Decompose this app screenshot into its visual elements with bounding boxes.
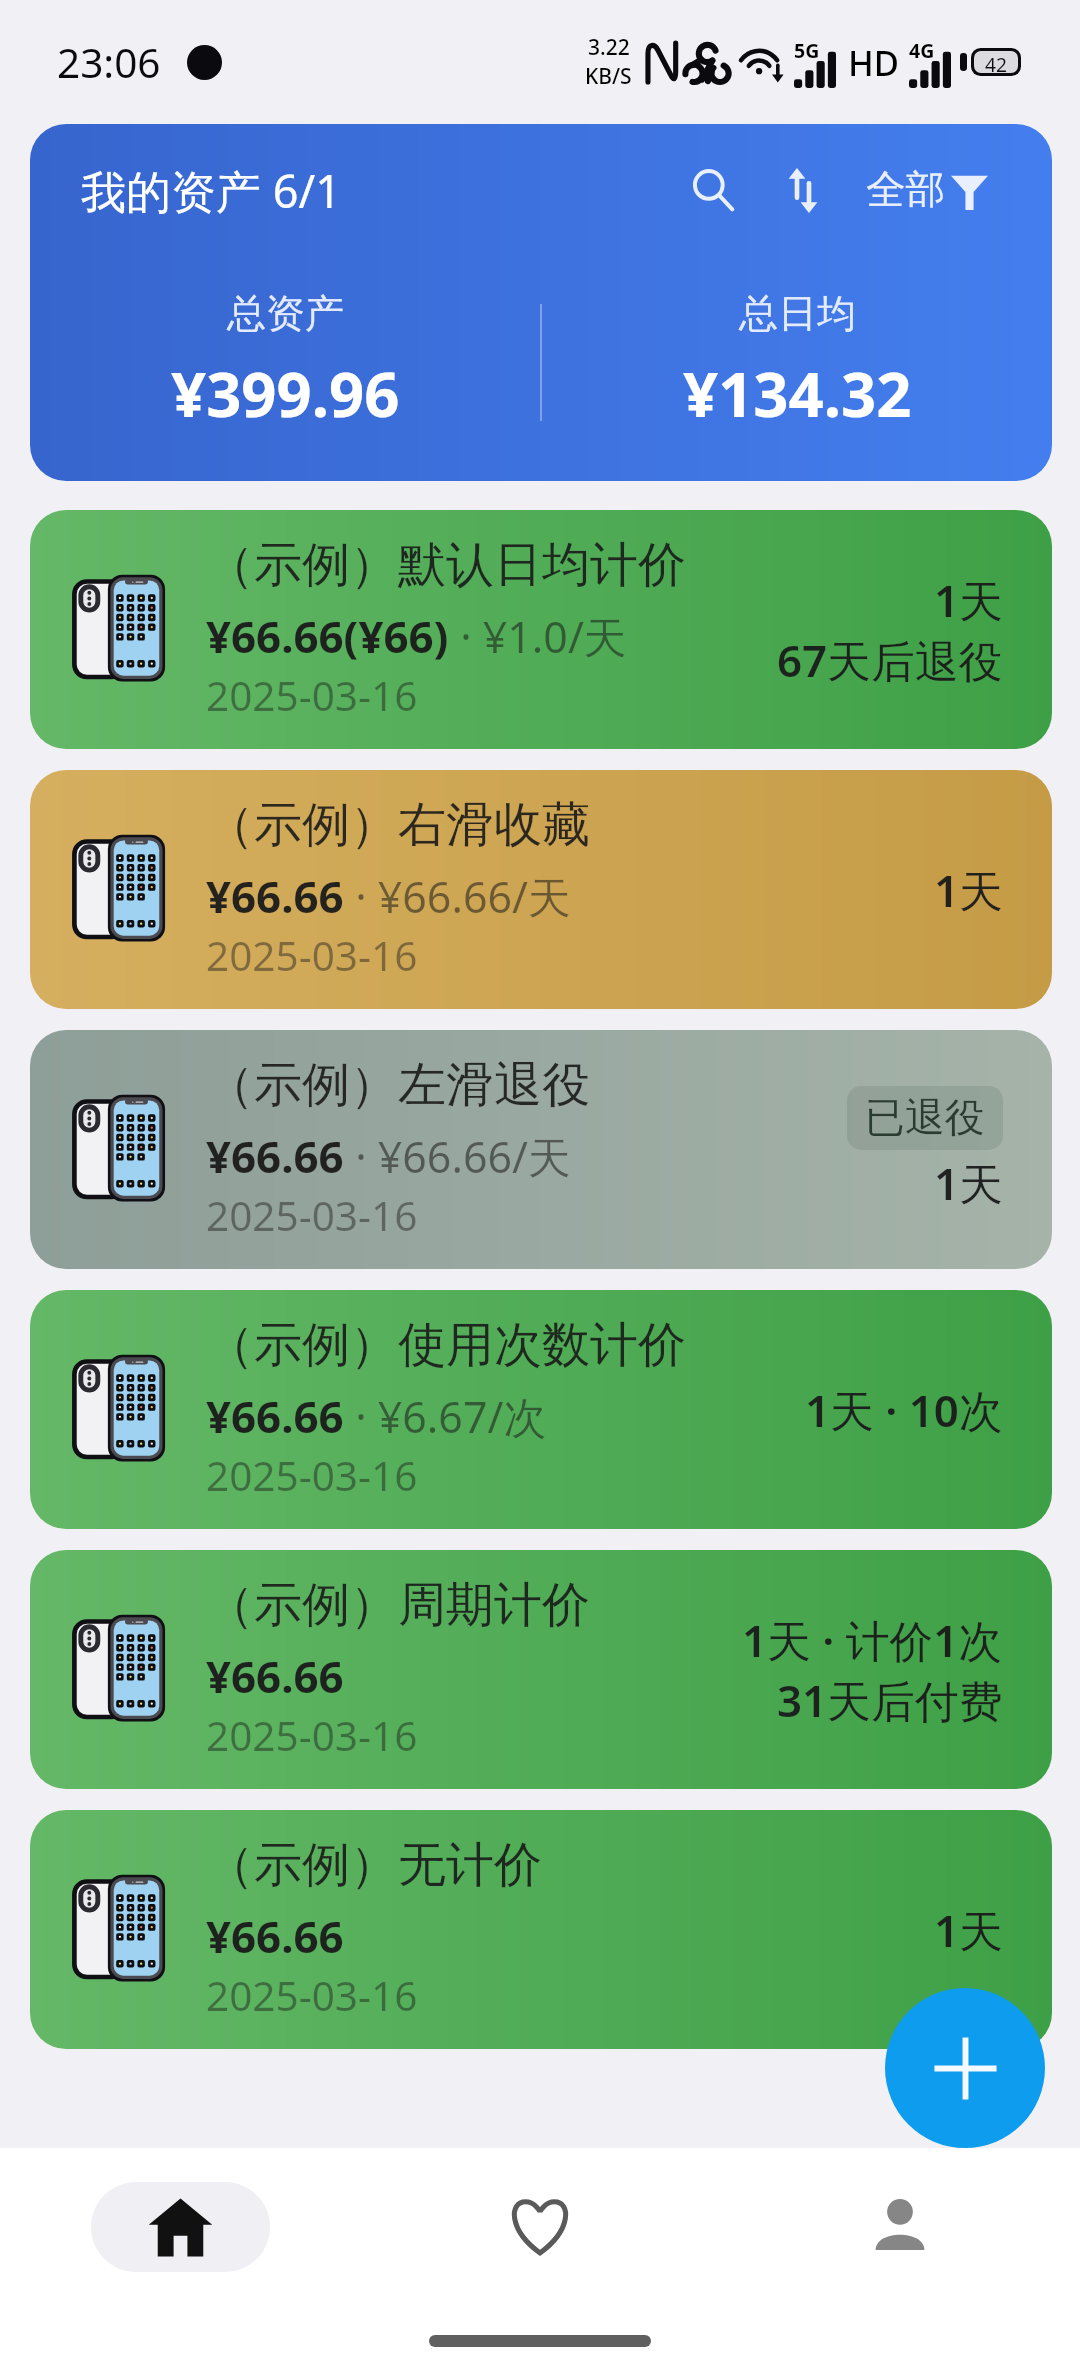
staticText: · ¥66.66/天 <box>344 1127 571 1186</box>
staticText: 已退役 <box>865 1093 985 1143</box>
staticText: 总资产 <box>227 289 344 338</box>
staticText: ¥134.32 <box>683 351 912 435</box>
staticText: ¥66.66 <box>206 866 344 926</box>
button[interactable]: Add asset <box>885 1988 1045 2148</box>
button[interactable]: （示例）无计价 <box>30 1810 1052 2049</box>
staticText: （示例）左滑退役 <box>206 1055 590 1115</box>
staticText: 我的资产 6/1 <box>81 160 341 221</box>
button[interactable]: （示例）使用次数计价 <box>30 1290 1052 1529</box>
button[interactable]: Favorites <box>495 2182 585 2272</box>
staticText: （示例）使用次数计价 <box>206 1315 686 1375</box>
staticText: 3.22 <box>588 33 630 62</box>
button[interactable]: Search <box>668 145 758 235</box>
staticText: （示例）右滑收藏 <box>206 795 590 855</box>
staticText: 5G <box>794 37 820 64</box>
staticText: 2025-03-16 <box>206 1968 418 2023</box>
staticText: HD <box>848 39 900 86</box>
button[interactable]: Home <box>91 2182 270 2272</box>
staticText: 31天后付费 <box>777 1670 1003 1730</box>
staticText: 1天 · 10次 <box>805 1380 1003 1440</box>
staticText: （示例）周期计价 <box>206 1575 590 1635</box>
staticText: 总日均 <box>739 289 856 338</box>
staticText: 2025-03-16 <box>206 1448 418 1503</box>
staticText: 42 <box>985 51 1007 73</box>
staticText: ¥66.66(¥66) <box>206 606 449 666</box>
staticText: 2025-03-16 <box>206 1188 418 1243</box>
button[interactable]: 我的资产 6/1 <box>30 124 1052 481</box>
staticText: 67天后退役 <box>777 630 1003 690</box>
staticText: ¥66.66 <box>206 1126 344 1186</box>
button[interactable]: （示例）默认日均计价 <box>30 510 1052 749</box>
button[interactable]: （示例）右滑收藏 <box>30 770 1052 1009</box>
staticText: · ¥1.0/天 <box>449 607 627 666</box>
staticText: 1天 <box>934 1153 1003 1213</box>
staticText: 全部 <box>866 165 946 215</box>
staticText: 1天 <box>934 860 1003 920</box>
staticText: （示例）无计价 <box>206 1835 542 1895</box>
staticText: ¥66.66 <box>206 1646 344 1706</box>
staticText: · ¥6.67/次 <box>344 1387 547 1446</box>
staticText: ¥399.96 <box>171 351 400 435</box>
staticText: 2025-03-16 <box>206 1708 418 1763</box>
staticText: 4G <box>909 37 935 64</box>
button[interactable]: Sort <box>758 145 848 235</box>
button[interactable]: Profile <box>855 2182 945 2272</box>
button[interactable]: （示例）左滑退役 <box>30 1030 1052 1269</box>
staticText: 1天 <box>934 1900 1003 1960</box>
staticText: 2025-03-16 <box>206 668 418 723</box>
staticText: ¥66.66 <box>206 1386 344 1446</box>
staticText: KB/S <box>585 62 632 91</box>
staticText: 1天 · 计价1次 <box>742 1610 1003 1670</box>
button[interactable]: （示例）周期计价 <box>30 1550 1052 1789</box>
staticText: ¥66.66 <box>206 1906 344 1966</box>
staticText: · ¥66.66/天 <box>344 867 571 926</box>
staticText: 2025-03-16 <box>206 928 418 983</box>
staticText: （示例）默认日均计价 <box>206 535 686 595</box>
staticText: 23:06 <box>57 35 161 90</box>
staticText: 1天 <box>934 570 1003 630</box>
button[interactable]: 全部 <box>866 165 1052 215</box>
